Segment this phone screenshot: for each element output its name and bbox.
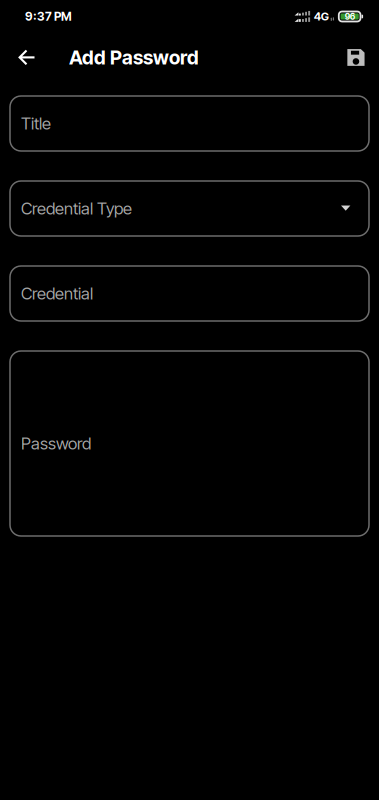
staticText: Title <box>21 113 51 134</box>
staticText: 9:37 PM <box>25 9 72 24</box>
staticText: Password <box>21 433 91 454</box>
staticText: 96 <box>345 11 355 22</box>
staticText: Add Password <box>69 46 199 69</box>
button[interactable]: Password <box>10 351 369 536</box>
button[interactable]: Title <box>10 96 369 151</box>
staticText: 4G <box>314 10 329 23</box>
button[interactable]: Credential <box>10 266 369 321</box>
button[interactable]: Back <box>7 37 47 77</box>
staticText: Credential Type <box>21 198 132 219</box>
button[interactable]: Credential Type <box>10 181 369 236</box>
button[interactable]: Save <box>336 37 376 77</box>
staticText: Credential <box>21 283 93 304</box>
